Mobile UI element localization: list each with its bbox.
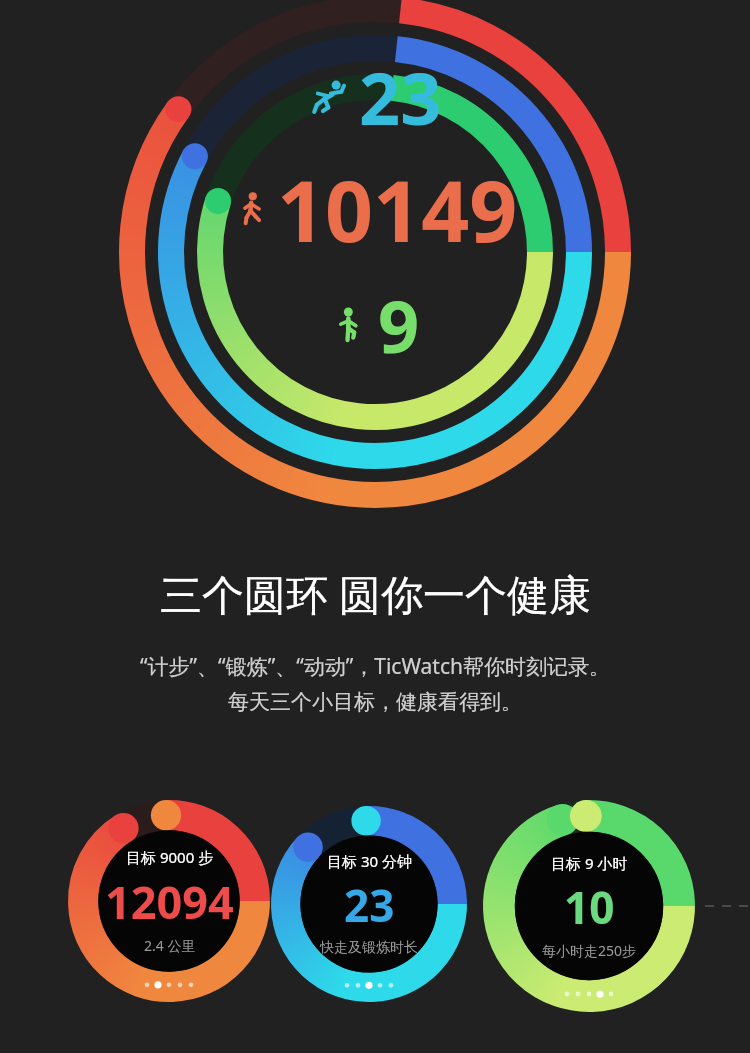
staticText: 23 bbox=[359, 48, 442, 146]
staticText: 三个圆环 圆你一个健康 bbox=[160, 565, 591, 622]
staticText: “计步”、“锻炼”、“动动”，TicWatch帮你时刻记录。 bbox=[140, 652, 610, 681]
staticText: 目标 9 小时 bbox=[551, 853, 628, 873]
staticText: 2.4 公里 bbox=[144, 936, 196, 955]
other: Move hours bbox=[330, 305, 370, 345]
staticText: 目标 9000 步 bbox=[126, 847, 214, 867]
staticText: 每天三个小目标，健康看得到。 bbox=[228, 689, 522, 715]
staticText: 9 bbox=[378, 276, 420, 374]
button[interactable]: Move goal bbox=[483, 800, 695, 1012]
other: Steps bbox=[233, 190, 271, 228]
staticText: 目标 30 分钟 bbox=[327, 851, 412, 871]
staticText: 23 bbox=[344, 875, 395, 935]
button[interactable]: Exercise goal bbox=[271, 806, 467, 1002]
other: Exercise bbox=[309, 76, 351, 118]
button[interactable]: Steps goal bbox=[68, 800, 270, 1002]
staticText: 12094 bbox=[105, 871, 234, 932]
staticText: 10149 bbox=[277, 152, 518, 266]
staticText: 快走及锻炼时长 bbox=[320, 939, 418, 957]
staticText: 每小时走250步 bbox=[542, 941, 637, 960]
staticText: 10 bbox=[564, 877, 615, 937]
